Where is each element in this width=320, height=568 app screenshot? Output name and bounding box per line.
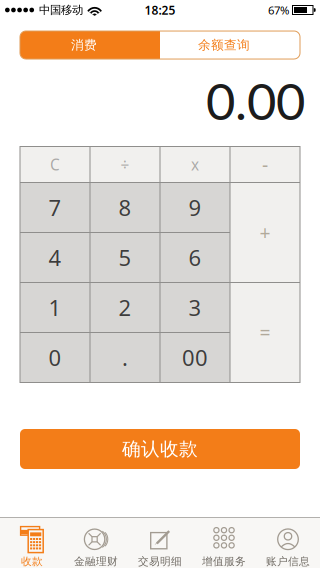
button[interactable]: x	[160, 147, 229, 182]
staticText: 消费	[71, 37, 97, 53]
staticText: 6	[188, 242, 201, 272]
button[interactable]: 7	[20, 183, 89, 232]
button[interactable]: 9	[160, 183, 229, 232]
button[interactable]: 金融理财	[64, 518, 128, 568]
button[interactable]: =	[230, 283, 299, 382]
staticText: 0	[48, 342, 61, 372]
staticText: 收款	[21, 555, 43, 568]
button[interactable]: -	[230, 147, 299, 182]
staticText: 0.00	[206, 70, 305, 131]
button[interactable]: 余额查询	[160, 31, 300, 59]
button[interactable]: 4	[20, 233, 89, 282]
button[interactable]: 确认收款	[20, 429, 300, 469]
staticText: 中国移动	[39, 3, 83, 17]
staticText: -	[262, 151, 268, 178]
staticText: 00	[182, 342, 208, 372]
staticText: 8	[118, 192, 131, 222]
staticText: 5	[118, 242, 131, 272]
staticText: 确认收款	[122, 437, 198, 461]
button[interactable]: 8	[90, 183, 159, 232]
button[interactable]: 1	[20, 283, 89, 332]
button[interactable]: +	[230, 183, 299, 282]
staticText: 余额查询	[198, 37, 250, 53]
staticText: +	[259, 219, 270, 246]
staticText: 3	[188, 292, 201, 322]
staticText: 7	[48, 192, 61, 222]
button[interactable]: ÷	[90, 147, 159, 182]
button[interactable]: 账户信息	[256, 518, 320, 568]
staticText: 9	[188, 192, 201, 222]
staticText: 4	[48, 242, 61, 272]
button[interactable]: C	[20, 147, 89, 182]
staticText: 增值服务	[202, 555, 246, 568]
button[interactable]: 2	[90, 283, 159, 332]
staticText: .	[122, 342, 128, 372]
staticText: 2	[118, 292, 131, 322]
button[interactable]: 收款	[0, 518, 64, 568]
staticText: 账户信息	[266, 555, 310, 568]
button[interactable]: 00	[160, 333, 229, 382]
staticText: 67%	[268, 2, 289, 18]
staticText: x	[191, 154, 199, 175]
staticText: 金融理财	[74, 555, 118, 568]
button[interactable]: 6	[160, 233, 229, 282]
staticText: 18:25	[144, 2, 175, 18]
staticText: C	[50, 154, 60, 175]
button[interactable]: .	[90, 333, 159, 382]
staticText: 交易明细	[138, 555, 182, 568]
button[interactable]: 5	[90, 233, 159, 282]
staticText: 1	[48, 292, 61, 322]
button[interactable]: 消费	[20, 31, 160, 59]
staticText: =	[259, 319, 270, 346]
button[interactable]: 增值服务	[192, 518, 256, 568]
button[interactable]: 0	[20, 333, 89, 382]
button[interactable]: 交易明细	[128, 518, 192, 568]
staticText: ÷	[120, 154, 129, 175]
button[interactable]: 3	[160, 283, 229, 332]
